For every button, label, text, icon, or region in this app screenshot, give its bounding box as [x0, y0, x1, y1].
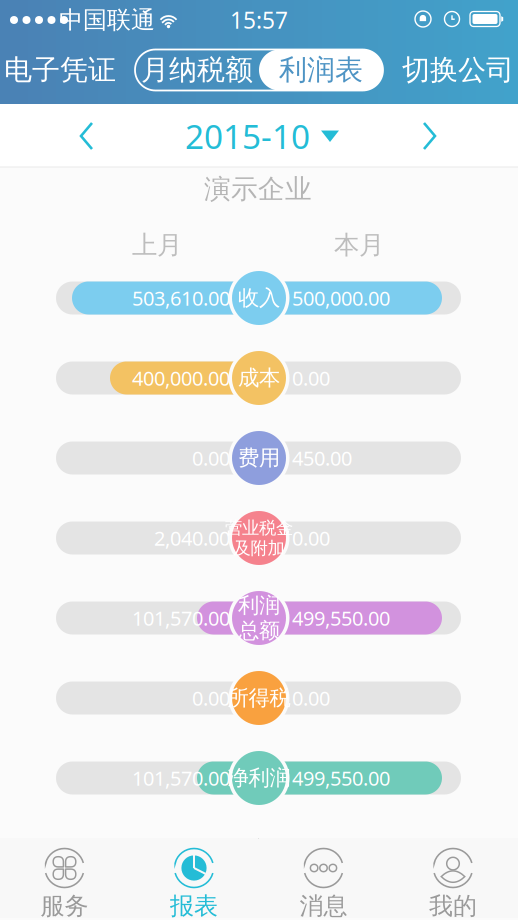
- staticText: 切换公司: [402, 53, 514, 87]
- staticText: 0.00: [292, 685, 330, 711]
- staticText: 演示企业: [204, 173, 312, 205]
- staticText: 本月: [334, 229, 384, 260]
- staticText: 营业税金: [225, 517, 293, 538]
- staticText: 净利润: [227, 765, 290, 791]
- button[interactable]: 消息: [259, 838, 388, 918]
- staticText: 及附加: [233, 537, 284, 559]
- button[interactable]: 利润表: [259, 49, 383, 90]
- staticText: 利润: [238, 592, 280, 618]
- staticText: 499,550.00: [292, 765, 390, 791]
- staticText: 503,610.00: [132, 285, 230, 311]
- staticText: 总额: [238, 617, 280, 644]
- staticText: 收入: [238, 285, 280, 311]
- staticText: 500,000.00: [292, 285, 390, 311]
- button[interactable]: 报表: [129, 838, 258, 918]
- staticText: 上月: [132, 229, 182, 260]
- staticText: 所得税: [227, 685, 290, 711]
- staticText: 400,000.00: [132, 365, 230, 391]
- staticText: 服务: [40, 891, 88, 920]
- button[interactable]: 服务: [0, 838, 129, 918]
- button[interactable]: 2015-10: [169, 108, 355, 164]
- staticText: 15:57: [230, 5, 288, 35]
- button[interactable]: Next month: [398, 108, 462, 164]
- staticText: 101,570.00: [132, 605, 230, 631]
- staticText: 101,570.00: [132, 765, 230, 791]
- button[interactable]: 切换公司: [403, 46, 513, 94]
- staticText: 利润表: [279, 53, 363, 87]
- staticText: 0.00: [192, 685, 230, 711]
- staticText: 我的: [429, 891, 477, 920]
- staticText: 450.00: [292, 445, 352, 471]
- staticText: 电子凭证: [4, 53, 116, 87]
- staticText: 499,550.00: [292, 605, 390, 631]
- staticText: 0.00: [192, 445, 230, 471]
- staticText: 费用: [238, 445, 280, 471]
- staticText: 消息: [299, 891, 347, 920]
- staticText: 月纳税额: [141, 53, 253, 87]
- button[interactable]: 电子凭证: [8, 46, 112, 94]
- staticText: 2,040.00: [154, 525, 230, 551]
- staticText: 报表: [170, 891, 218, 920]
- staticText: 0.00: [292, 365, 330, 391]
- staticText: 成本: [238, 365, 280, 391]
- staticText: 0.00: [292, 525, 330, 551]
- button[interactable]: 我的: [388, 838, 517, 918]
- button[interactable]: Previous month: [56, 108, 120, 164]
- staticText: 2015-10: [185, 114, 310, 158]
- staticText: 中国联通: [59, 5, 155, 35]
- button[interactable]: 月纳税额: [135, 49, 259, 90]
